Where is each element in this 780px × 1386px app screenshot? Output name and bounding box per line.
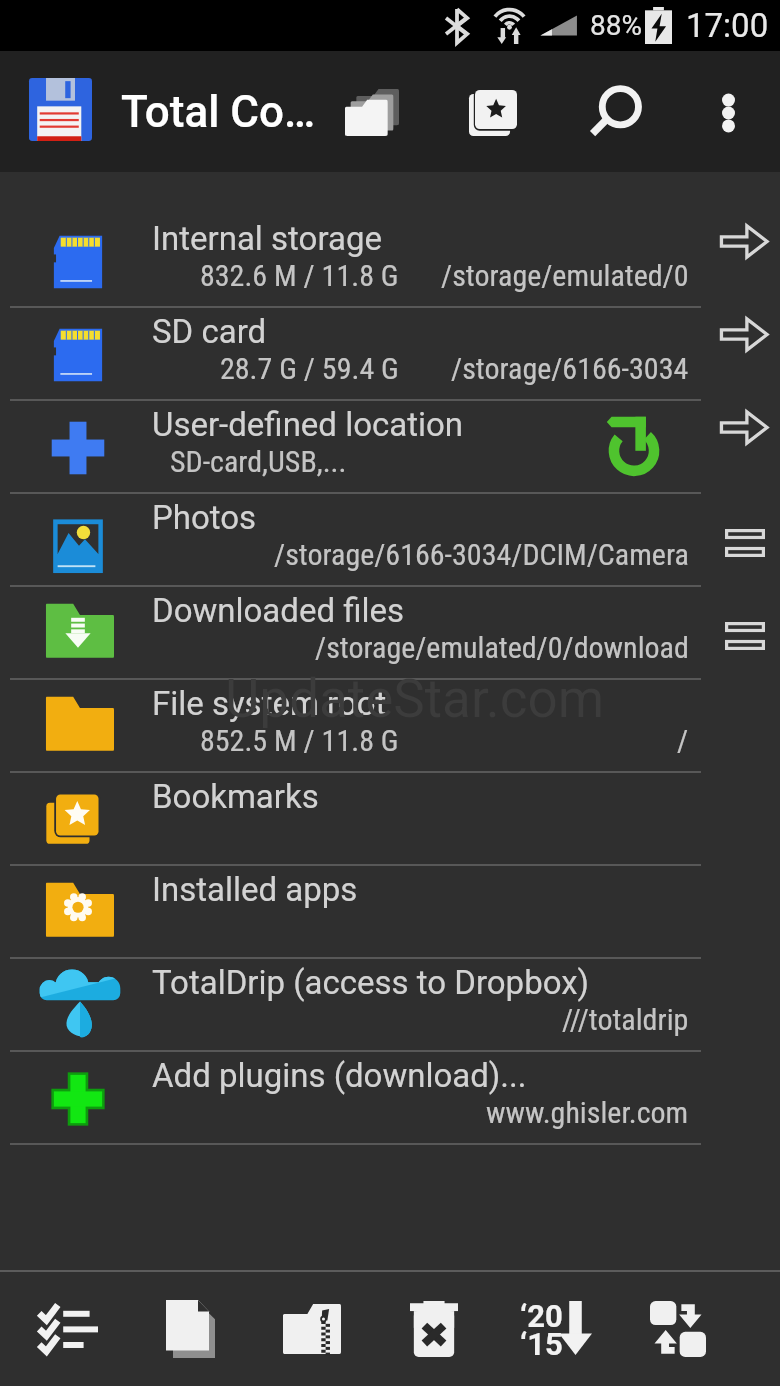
button[interactable]: Options Photos [709, 507, 780, 579]
button[interactable]: More options [686, 51, 770, 172]
staticText: Total Co… [121, 86, 316, 138]
staticText: 17:00 [686, 6, 769, 45]
staticText: SD-card,USB,... [170, 444, 347, 479]
button[interactable]: Search [572, 51, 656, 172]
staticText: 88% [590, 9, 642, 42]
button[interactable]: Open Internal storage [708, 205, 780, 277]
button[interactable]: Bookmarks [0, 773, 780, 866]
staticText: /storage/6166-3034/DCIM/Camera [274, 537, 689, 572]
button[interactable]: Photos [0, 494, 780, 587]
button[interactable]: TotalDrip (access to Dropbox) [0, 959, 780, 1052]
button[interactable]: Open SD card [708, 298, 780, 370]
staticText: /storage/emulated/0 [441, 258, 689, 293]
button[interactable]: SD card [0, 308, 780, 401]
staticText: Photos [152, 498, 257, 537]
staticText: 852.5 M / 11.8 G [200, 723, 399, 758]
staticText: ///totaldrip [562, 1002, 689, 1037]
staticText: 832.6 M / 11.8 G [200, 258, 399, 293]
staticText: Downloaded files [152, 591, 405, 630]
staticText: SD card [152, 312, 267, 351]
staticText: Add plugins (download)... [152, 1056, 527, 1095]
staticText: /storage/6166-3034 [451, 351, 689, 386]
staticText: Bookmarks [152, 777, 319, 816]
staticText: ‘15 [520, 1326, 563, 1362]
button[interactable]: Downloaded files [0, 587, 780, 680]
button[interactable]: New file [130, 1272, 250, 1386]
button[interactable]: File system root [0, 680, 780, 773]
button[interactable]: Exchange [618, 1272, 738, 1386]
button[interactable]: Open User-defined location [708, 391, 780, 463]
button[interactable]: Options Downloaded files [709, 600, 780, 672]
staticText: ‘20 [520, 1298, 563, 1334]
staticText: / [677, 723, 689, 758]
button[interactable]: Internal storage [0, 215, 780, 308]
staticText: File system root [152, 684, 387, 723]
staticText: User-defined location [152, 405, 464, 444]
staticText: UpdateStar.com [225, 668, 605, 730]
staticText: /storage/emulated/0/download [315, 630, 689, 665]
button[interactable]: User-defined location [0, 401, 780, 494]
staticText: www.ghisler.com [486, 1095, 689, 1130]
button[interactable]: Pack [252, 1272, 372, 1386]
button[interactable]: Bookmarks [451, 51, 535, 172]
button[interactable]: Folders [330, 51, 414, 172]
staticText: 28.7 G / 59.4 G [220, 351, 399, 386]
button[interactable]: Add plugins (download)... [0, 1052, 780, 1145]
button[interactable]: Installed apps [0, 866, 780, 959]
button[interactable]: Sort by date [496, 1272, 616, 1386]
button[interactable]: Select [8, 1272, 128, 1386]
staticText: TotalDrip (access to Dropbox) [152, 963, 590, 1002]
staticText: Internal storage [152, 219, 382, 258]
staticText: Installed apps [152, 870, 358, 909]
button[interactable]: Delete [374, 1272, 494, 1386]
